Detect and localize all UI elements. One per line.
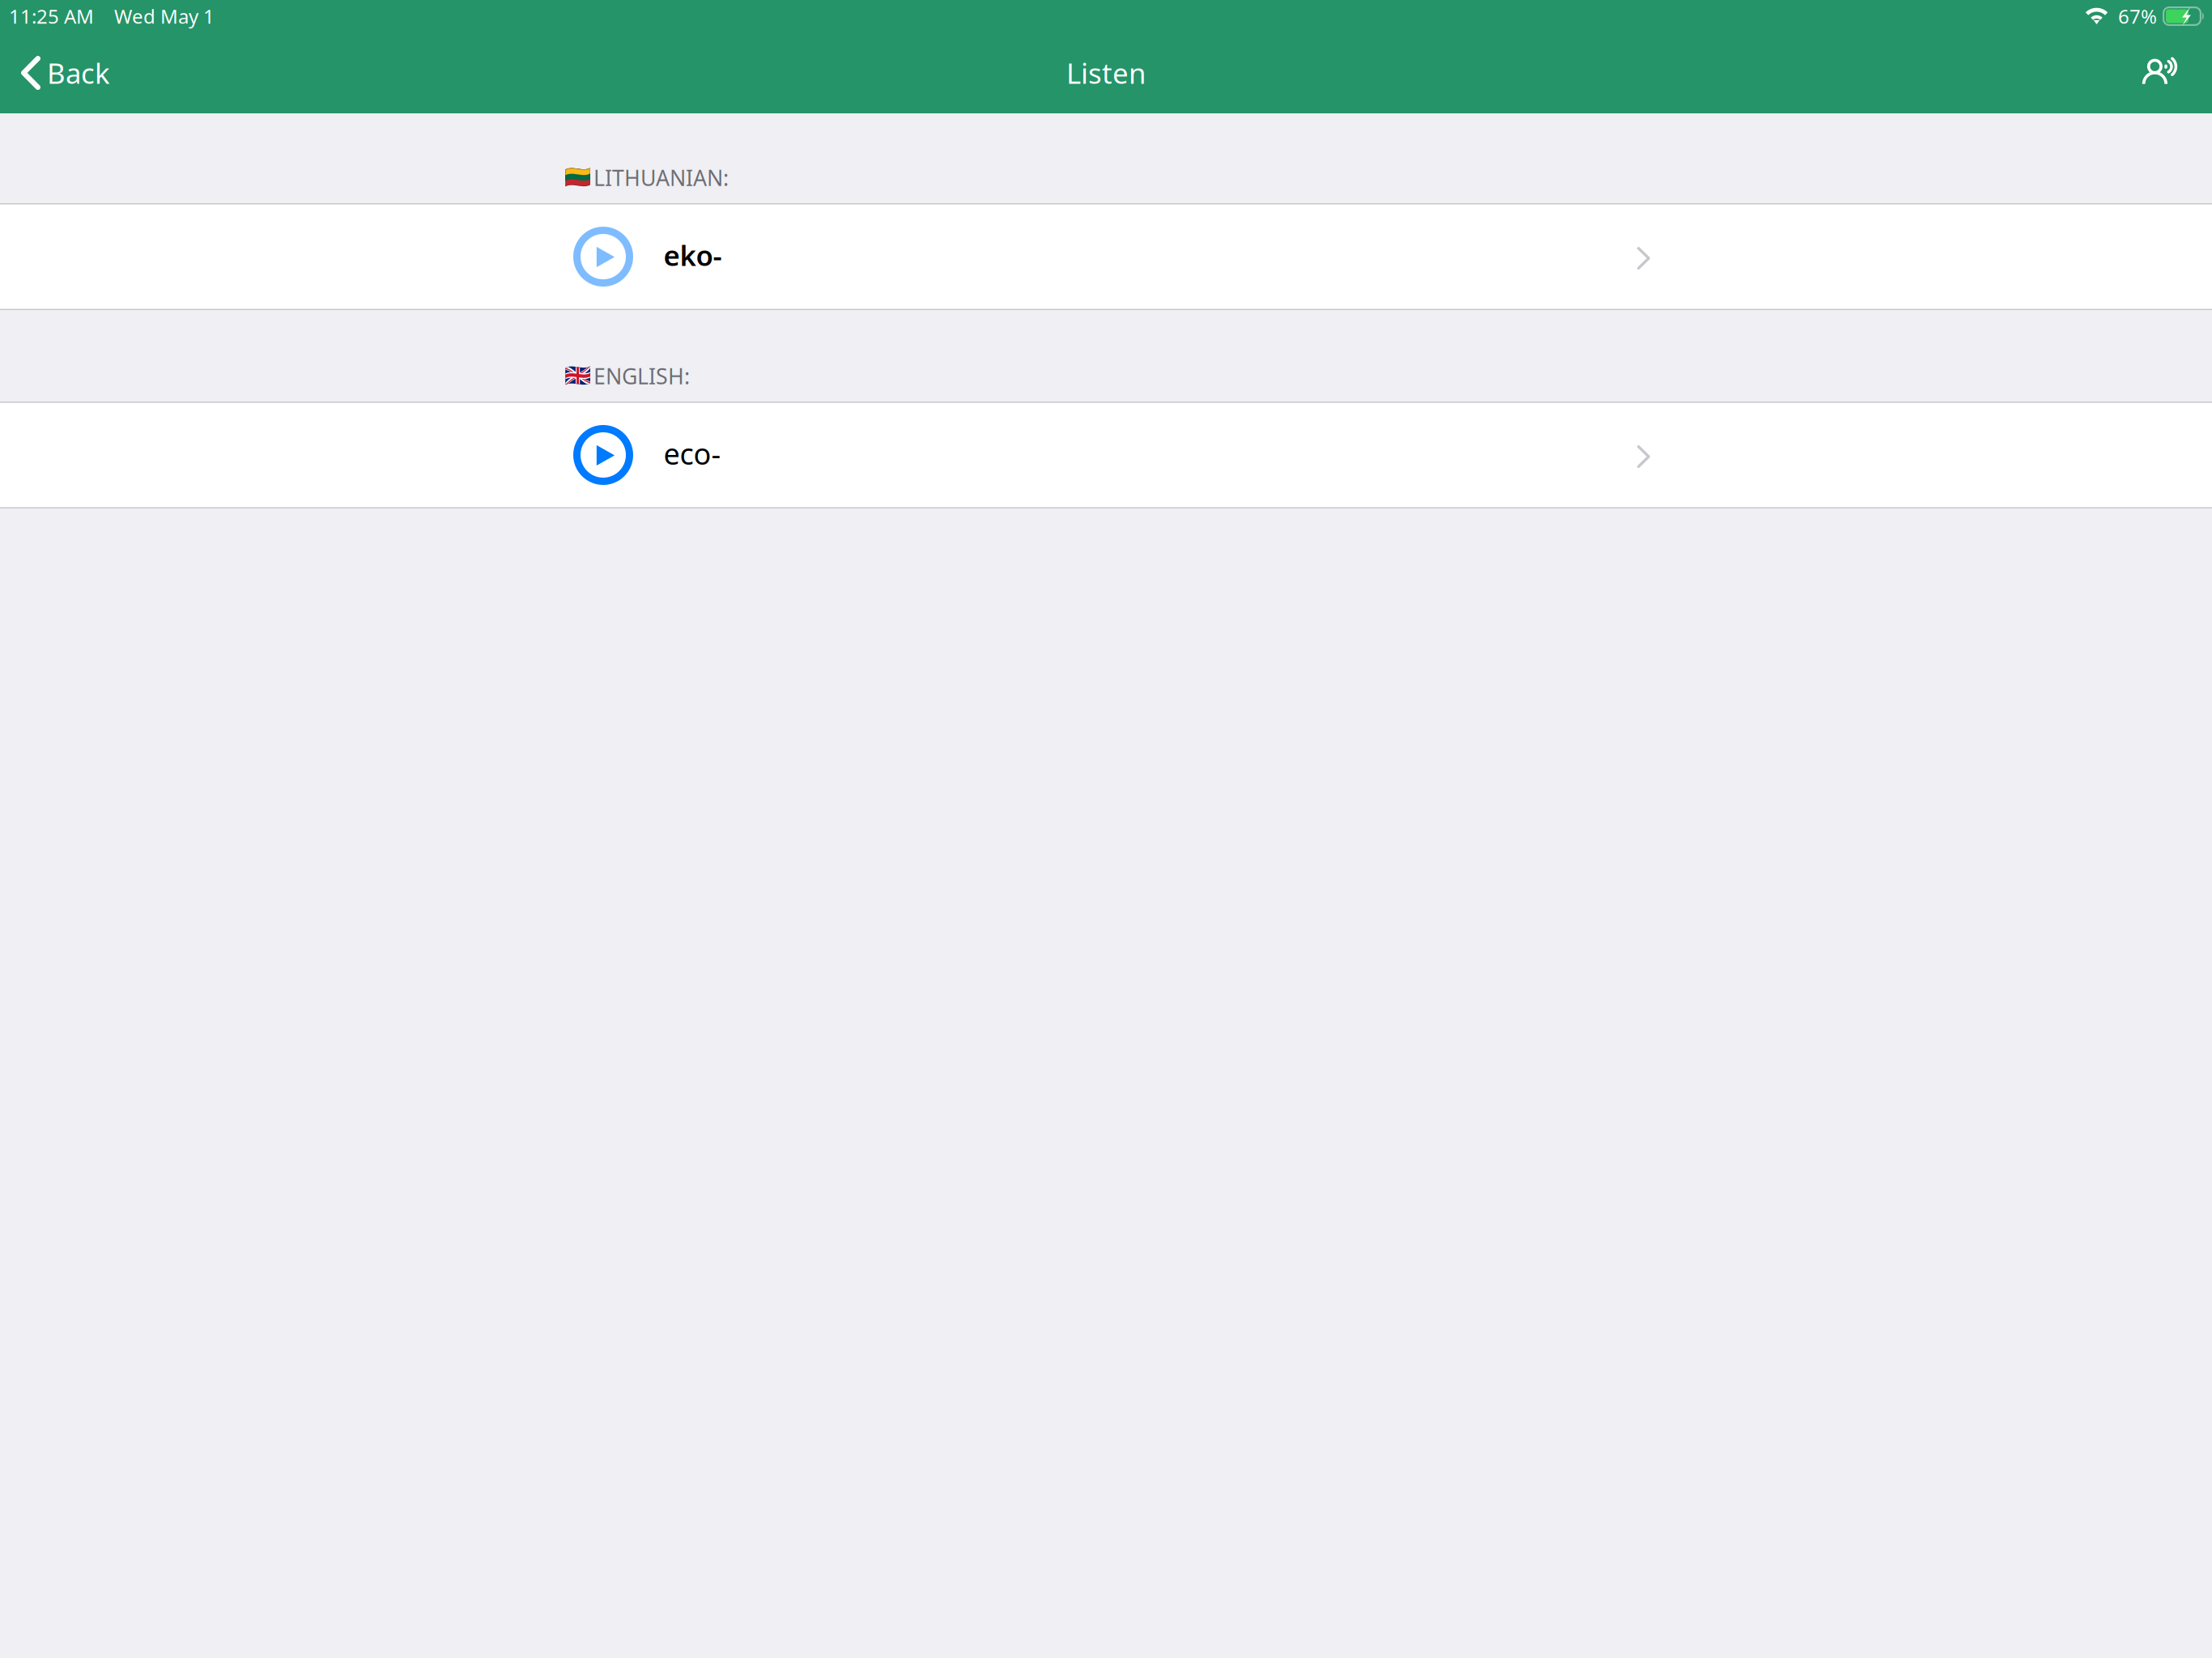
- staticText: Wed May 1: [114, 3, 215, 29]
- button[interactable]: Back: [0, 32, 126, 113]
- staticText: eko-: [664, 236, 722, 274]
- button[interactable]: eko-: [0, 203, 2212, 310]
- staticText: Listen: [1066, 54, 1146, 91]
- staticText: 11:25 AM: [9, 3, 94, 29]
- staticText: LITHUANIAN:: [593, 163, 729, 192]
- button[interactable]: eco-: [0, 402, 2212, 508]
- staticText: 🇱🇹: [564, 165, 591, 190]
- staticText: 67%: [2118, 3, 2157, 29]
- button[interactable]: Play eko-: [573, 227, 633, 287]
- staticText: ENGLISH:: [593, 362, 690, 390]
- button[interactable]: Play eco-: [573, 425, 633, 485]
- staticText: eco-: [664, 434, 721, 473]
- button[interactable]: Speak: [2142, 32, 2212, 113]
- staticText: Back: [47, 54, 110, 91]
- staticText: 🇬🇧: [564, 364, 591, 388]
